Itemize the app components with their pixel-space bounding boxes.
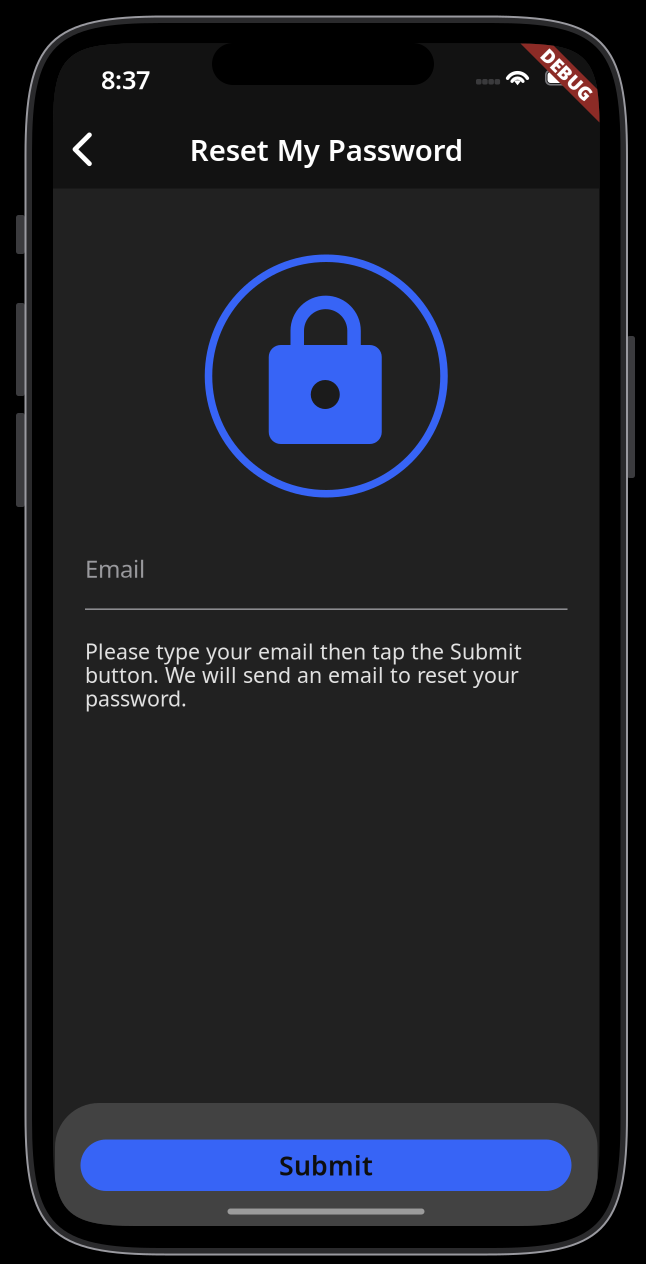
button[interactable]: Back (53, 114, 112, 184)
staticText: button. We will send an email to reset y… (85, 660, 519, 689)
button[interactable]: Submit (80, 1139, 571, 1191)
staticText: Email (85, 552, 145, 584)
staticText: DEBUG (534, 62, 599, 87)
staticText: password. (85, 684, 187, 712)
staticText: 8:37 (101, 62, 150, 96)
staticText: Submit (279, 1147, 373, 1183)
staticText: Reset My Password (190, 130, 463, 169)
staticText: Please type your email then tap the Subm… (85, 637, 522, 665)
